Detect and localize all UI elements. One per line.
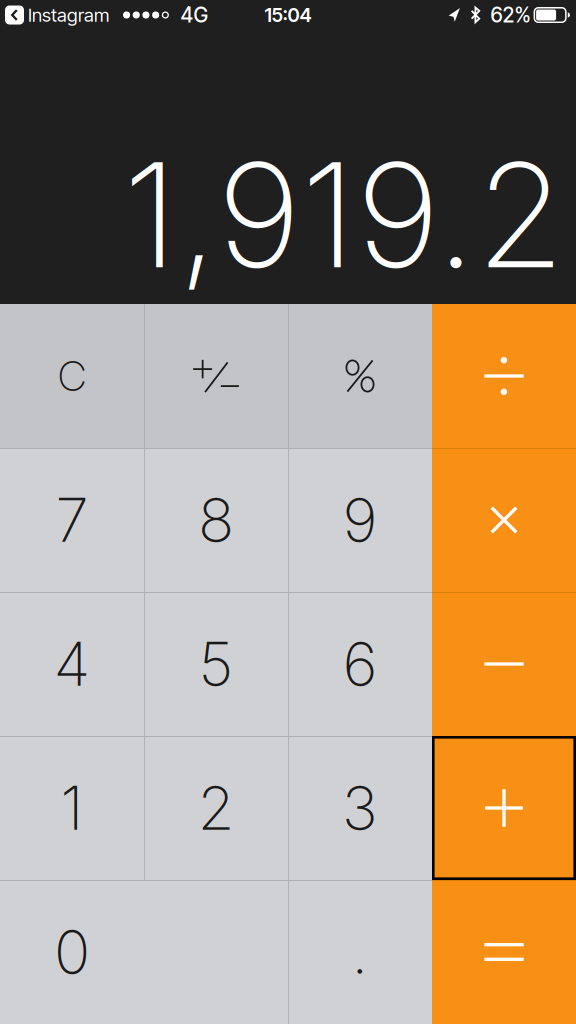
staticText: Instagram bbox=[28, 4, 109, 26]
button[interactable]: Plus minus bbox=[144, 304, 288, 448]
button[interactable]: Back to Instagram bbox=[0, 0, 113, 30]
staticText: 5 bbox=[198, 628, 233, 700]
staticText: 9 bbox=[342, 484, 377, 556]
button[interactable]: 7 bbox=[0, 448, 144, 592]
staticText: 1 bbox=[60, 772, 83, 844]
button[interactable]: 8 bbox=[144, 448, 288, 592]
staticText: 4G bbox=[180, 2, 208, 27]
button[interactable]: Equals bbox=[432, 880, 576, 1024]
staticText: . bbox=[351, 916, 368, 988]
button[interactable]: Multiply bbox=[432, 448, 576, 592]
staticText: C bbox=[58, 351, 86, 401]
staticText: 1,919.2 bbox=[123, 128, 565, 302]
button[interactable]: 5 bbox=[144, 592, 288, 736]
staticText: 2 bbox=[197, 772, 234, 844]
button[interactable]: 4 bbox=[0, 592, 144, 736]
button[interactable]: Divide bbox=[432, 304, 576, 448]
button[interactable]: 9 bbox=[288, 448, 432, 592]
button[interactable]: Clear bbox=[0, 304, 144, 448]
button[interactable]: 6 bbox=[288, 592, 432, 736]
button[interactable]: Decimal point bbox=[288, 880, 432, 1024]
staticText: 7 bbox=[55, 484, 88, 556]
button[interactable]: 0 bbox=[0, 880, 288, 1024]
button[interactable]: 1 bbox=[0, 736, 144, 880]
staticText: 0 bbox=[54, 916, 90, 988]
button[interactable]: 3 bbox=[288, 736, 432, 880]
staticText: 6 bbox=[342, 628, 377, 700]
staticText: 4 bbox=[53, 628, 90, 700]
staticText: 15:04 bbox=[264, 3, 311, 27]
button[interactable]: Percent bbox=[288, 304, 432, 448]
button[interactable]: 2 bbox=[144, 736, 288, 880]
staticText: 62% bbox=[491, 2, 531, 27]
staticText: 8 bbox=[198, 484, 234, 556]
button[interactable]: Minus bbox=[432, 592, 576, 736]
staticText: 3 bbox=[342, 772, 378, 844]
button[interactable]: Plus bbox=[432, 736, 576, 880]
